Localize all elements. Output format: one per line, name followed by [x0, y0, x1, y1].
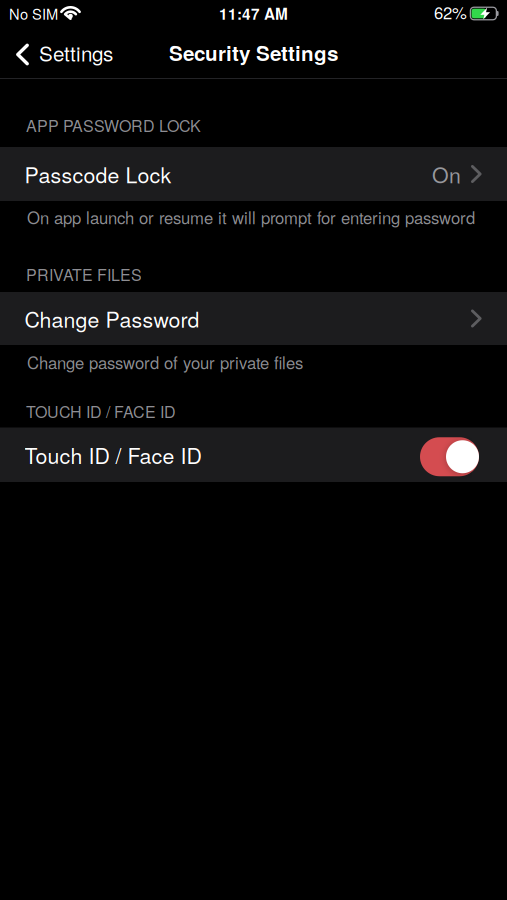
staticText: PRIVATE FILES — [26, 263, 142, 285]
staticText: On — [432, 159, 461, 189]
staticText: Passcode Lock — [24, 159, 171, 189]
staticText: On app launch or resume it will prompt f… — [27, 205, 475, 229]
staticText: No SIM — [9, 3, 58, 24]
staticText: 62% — [434, 0, 467, 24]
button[interactable]: Touch ID / Face ID — [0, 427, 507, 482]
button[interactable]: Change Password — [0, 292, 507, 345]
staticText: Settings — [39, 38, 113, 67]
button[interactable]: Settings — [0, 38, 113, 67]
button[interactable]: Passcode Lock — [0, 147, 507, 201]
staticText: Change password of your private files — [27, 350, 303, 374]
staticText: Change Password — [24, 303, 199, 334]
staticText: Security Settings — [169, 38, 338, 67]
staticText: TOUCH ID / FACE ID — [26, 400, 176, 422]
staticText: 11:47 AM — [219, 2, 288, 24]
staticText: Touch ID / Face ID — [24, 439, 201, 470]
staticText: APP PASSWORD LOCK — [26, 114, 201, 136]
